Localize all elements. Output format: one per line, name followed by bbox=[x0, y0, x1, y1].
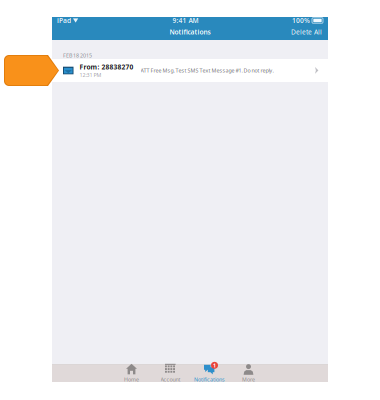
button[interactable]: Delete All bbox=[285, 25, 328, 39]
staticText: More bbox=[242, 376, 255, 383]
staticText: ATT Free Msg. Test SMS Text Message #1. … bbox=[140, 67, 273, 74]
staticText: 9:41 AM bbox=[172, 16, 198, 25]
staticText: 100% bbox=[292, 16, 310, 25]
staticText: 1 bbox=[213, 362, 216, 369]
staticText: FEB 18 2015 bbox=[63, 52, 92, 59]
staticText: 12:31 PM bbox=[79, 71, 101, 78]
staticText: iPad bbox=[57, 16, 71, 25]
staticText: Notifications bbox=[169, 28, 210, 36]
staticText: Delete All bbox=[291, 28, 322, 36]
button[interactable]: Home bbox=[112, 364, 151, 382]
staticText: Home bbox=[124, 376, 139, 383]
button[interactable]: From: 28838270 bbox=[52, 59, 328, 82]
button[interactable]: 1 bbox=[190, 364, 229, 382]
button[interactable]: More bbox=[229, 364, 268, 382]
staticText: Notifications bbox=[194, 376, 225, 383]
staticText: Account bbox=[160, 376, 180, 383]
staticText: From: 28838270 bbox=[79, 62, 133, 71]
button[interactable]: Account bbox=[151, 364, 190, 382]
